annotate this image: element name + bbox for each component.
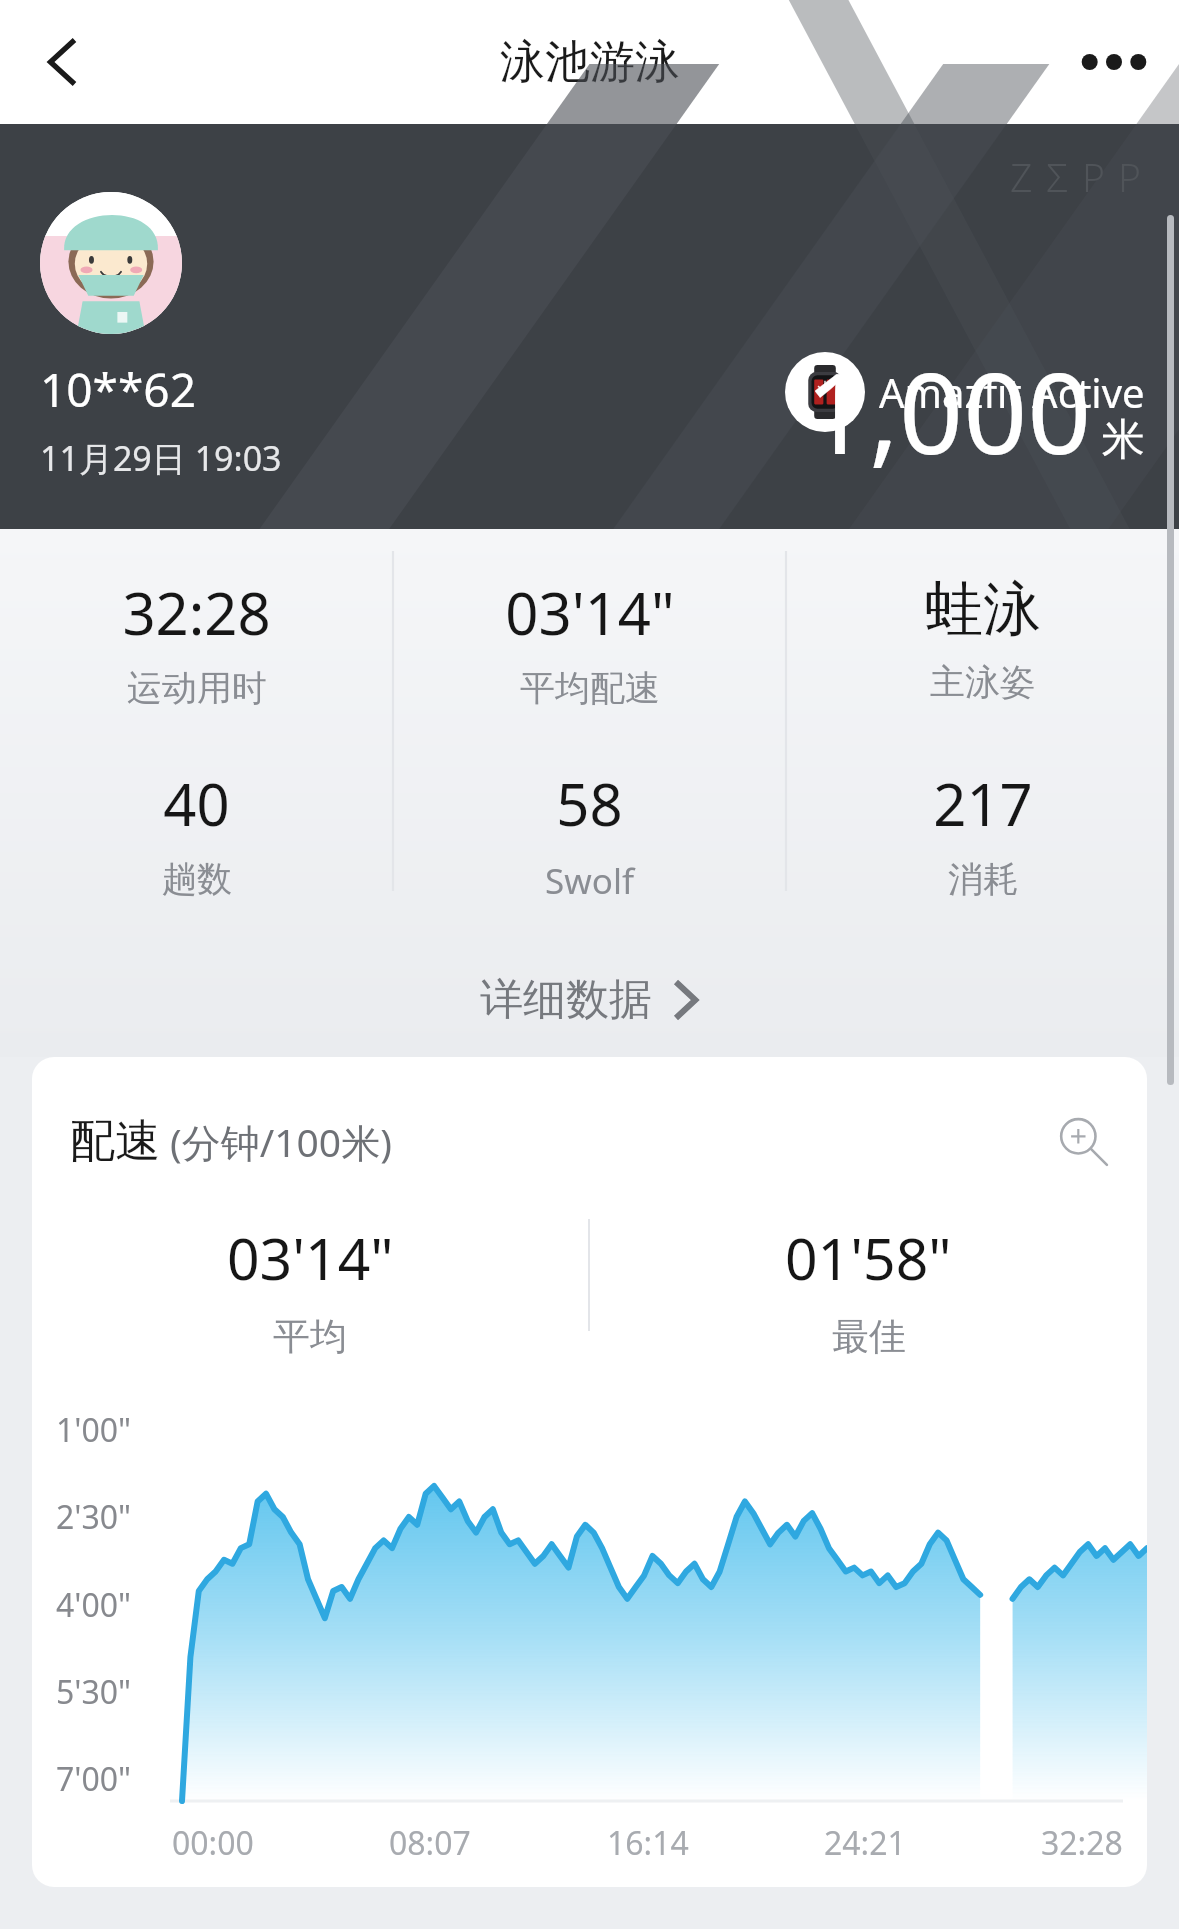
button[interactable]: Amazfit Active	[785, 352, 1145, 432]
staticText: P	[1118, 150, 1141, 203]
button[interactable]: 详细数据	[452, 959, 728, 1041]
staticText: 详细数据	[480, 973, 652, 1027]
staticText: 7'00"	[56, 1757, 132, 1801]
staticText: 00:00	[172, 1821, 254, 1865]
staticText: Σ	[1046, 150, 1069, 203]
staticText: Swolf	[545, 857, 634, 905]
staticText: 217	[933, 764, 1033, 843]
staticText: 平均配速	[520, 666, 660, 710]
staticText: 10**62	[40, 358, 196, 421]
staticText: (分钟/100米)	[170, 1115, 392, 1168]
staticText: 泳池游泳	[500, 34, 680, 91]
staticText: 运动用时	[127, 666, 267, 710]
staticText: 40	[163, 764, 230, 843]
button[interactable]: 03'14"	[393, 567, 786, 716]
staticText: 58	[556, 764, 623, 843]
staticText: P	[1082, 150, 1105, 203]
staticText: 08:07	[389, 1821, 471, 1865]
staticText: 米	[1102, 413, 1145, 467]
button[interactable]: 217	[786, 758, 1179, 907]
staticText: 1'00"	[56, 1408, 132, 1452]
staticText: 消耗	[948, 857, 1018, 901]
staticText: 主泳姿	[930, 660, 1035, 704]
button[interactable]: More options	[1069, 17, 1159, 107]
staticText: Amazfit Active	[879, 365, 1145, 419]
staticText: Z	[1010, 150, 1033, 203]
staticText: 平均	[273, 1313, 347, 1360]
staticText: 03'14"	[505, 573, 675, 652]
button[interactable]: 蛙泳	[786, 567, 1179, 710]
staticText: 趟数	[162, 857, 232, 901]
staticText: 配速	[70, 1113, 160, 1170]
staticText: 11月29日 19:03	[40, 435, 282, 481]
staticText: 32:28	[122, 573, 271, 652]
button[interactable]: 32:28	[0, 567, 393, 716]
staticText: 1,000	[805, 334, 1092, 487]
button[interactable]: 40	[0, 758, 393, 907]
button[interactable]: Back	[18, 18, 106, 106]
staticText: 蛙泳	[925, 573, 1041, 646]
staticText: 最佳	[832, 1313, 906, 1360]
staticText: 16:14	[607, 1821, 689, 1865]
button[interactable]: 58	[393, 758, 786, 911]
staticText: 2'30"	[56, 1495, 132, 1539]
staticText: 5'30"	[56, 1670, 132, 1714]
staticText: 4'00"	[56, 1583, 132, 1627]
button[interactable]: Profile avatar	[40, 192, 182, 334]
staticText: 24:21	[824, 1821, 906, 1865]
button[interactable]: Zoom chart	[1047, 1105, 1119, 1177]
staticText: 01'58"	[785, 1219, 952, 1297]
staticText: 03'14"	[227, 1219, 394, 1297]
staticText: 32:28	[1041, 1821, 1123, 1865]
